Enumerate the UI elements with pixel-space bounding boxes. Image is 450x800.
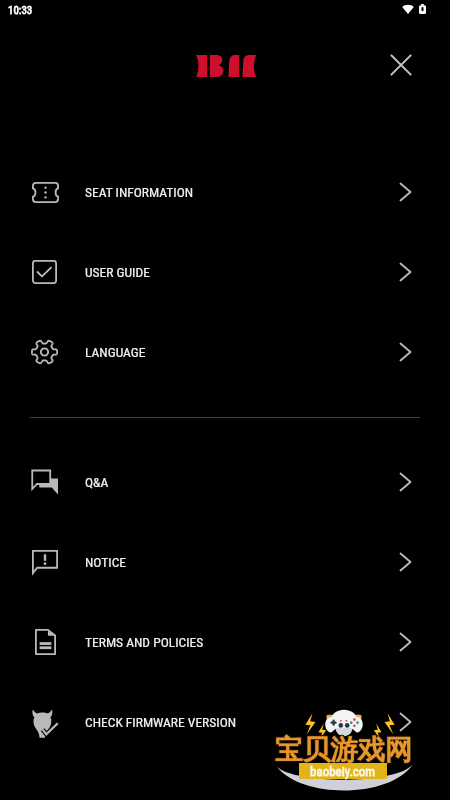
staticText: TERMS AND POLICIES [85, 634, 204, 650]
staticText: 10:33 [8, 4, 33, 17]
staticText: 宝贝游戏网 [275, 734, 413, 769]
button[interactable]: CHECK FIRMWARE VERSION [0, 682, 450, 762]
button[interactable]: NOTICE [0, 522, 450, 602]
staticText: baobeiy.com [310, 764, 376, 779]
staticText: NOTICE [85, 554, 127, 570]
staticText: 宝贝游戏网 [276, 732, 414, 767]
button[interactable]: Close [379, 43, 423, 87]
button[interactable]: TERMS AND POLICIES [0, 602, 450, 682]
staticText: CHECK FIRMWARE VERSION [85, 714, 237, 730]
staticText: 宝贝游戏网 [275, 732, 413, 767]
staticText: USER GUIDE [85, 264, 150, 280]
button[interactable]: Q&A [0, 442, 450, 522]
staticText: Q&A [85, 474, 109, 490]
button[interactable]: LANGUAGE [0, 312, 450, 392]
staticText: SEAT INFORMATION [85, 184, 194, 200]
button[interactable]: USER GUIDE [0, 232, 450, 312]
staticText: 宝贝游戏网 [276, 733, 414, 768]
staticText: 宝贝游戏网 [274, 732, 412, 767]
staticText: LANGUAGE [85, 344, 146, 360]
staticText: 宝贝游戏网 [276, 734, 414, 769]
staticText: 宝贝游戏网 [274, 733, 412, 768]
staticText: 宝贝游戏网 [275, 733, 413, 768]
staticText: 宝贝游戏网 [274, 734, 412, 769]
button[interactable]: SEAT INFORMATION [0, 152, 450, 232]
